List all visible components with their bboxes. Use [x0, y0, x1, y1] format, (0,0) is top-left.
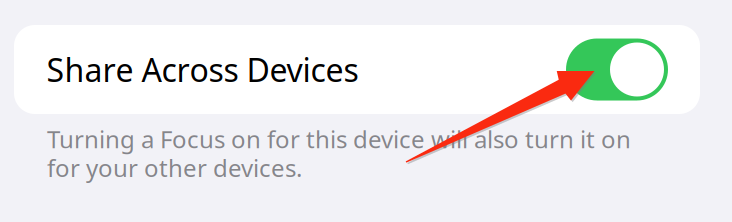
button[interactable]: Share Across Devices	[14, 25, 700, 114]
staticText: Share Across Devices	[46, 48, 358, 91]
staticText: for your other devices.	[47, 152, 302, 184]
staticText: Turning a Focus on for this device will …	[47, 123, 631, 155]
